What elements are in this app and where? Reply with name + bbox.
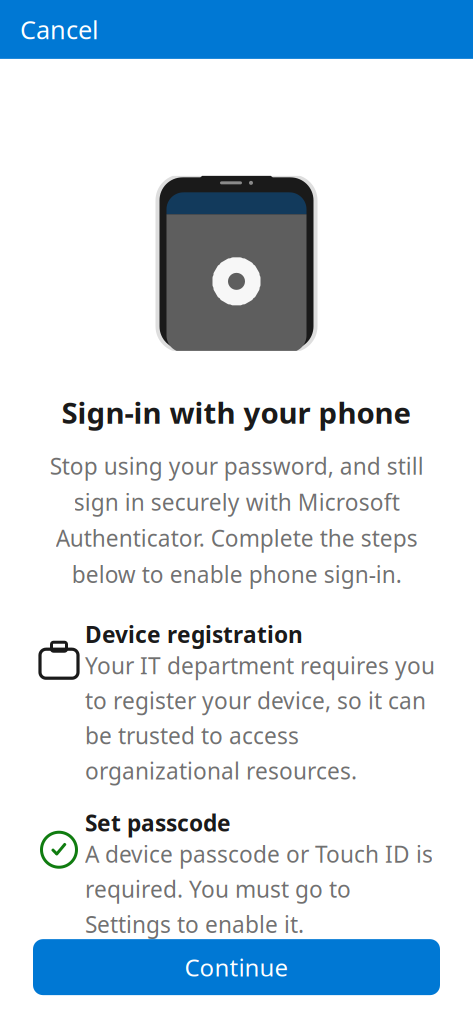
staticText: Your IT department requires you to regis… [85,650,435,786]
staticText: Set passcode [85,808,231,838]
staticText: A device passcode or Touch ID is require… [85,839,433,939]
staticText: Continue [184,951,288,983]
button[interactable]: Cancel [0,2,119,56]
button[interactable]: Continue [33,939,440,995]
staticText: Stop using your password, and still sign… [49,451,423,589]
staticText: Device registration [85,619,303,649]
staticText: Cancel [20,12,99,46]
staticText: Sign-in with your phone [61,393,411,432]
